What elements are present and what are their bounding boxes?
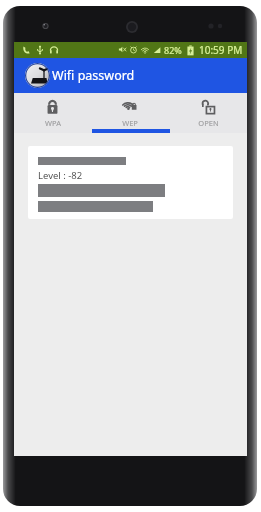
button[interactable]: WEP (91, 93, 169, 133)
staticText: OPEN (198, 118, 219, 128)
button[interactable]: Level : -82 (28, 146, 233, 219)
staticText: 82% (164, 44, 182, 56)
staticText: Level : -82 (38, 169, 83, 182)
button[interactable]: Wifi password app icon (25, 63, 50, 88)
button[interactable]: OPEN (169, 93, 247, 133)
staticText: WPA (45, 118, 61, 128)
staticText: 10:59 PM (199, 43, 243, 57)
staticText: WEP (122, 118, 138, 128)
staticText: Wifi password (52, 67, 135, 84)
button[interactable]: WPA (14, 93, 91, 133)
